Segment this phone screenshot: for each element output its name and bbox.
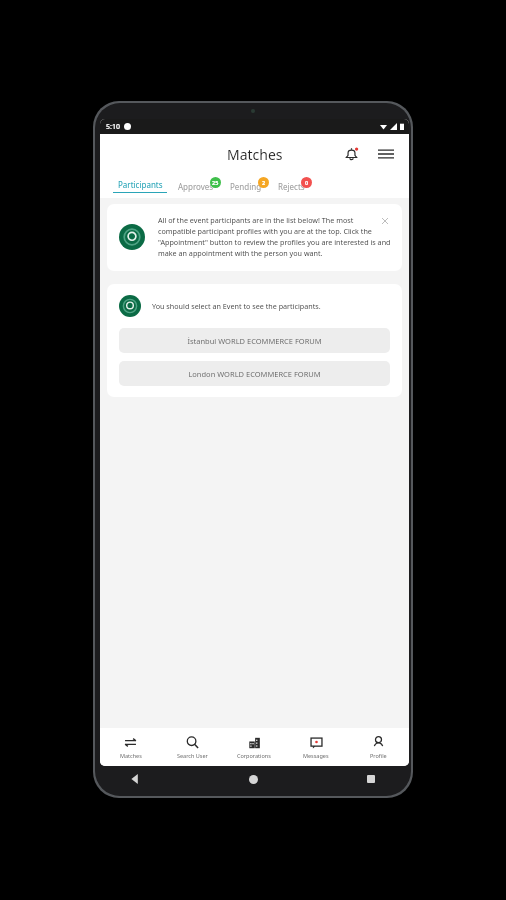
staticText: Participants — [118, 179, 163, 190]
staticText: Approves — [178, 181, 214, 192]
staticText: You should select an Event to see the pa… — [152, 301, 321, 311]
button[interactable]: Close — [379, 215, 391, 227]
staticText: 25 — [212, 179, 219, 186]
staticText: 2 — [262, 179, 266, 186]
staticText: 5:10 — [106, 122, 120, 132]
button[interactable]: Participants — [113, 179, 167, 193]
staticText: 0 — [305, 179, 309, 186]
button[interactable]: London WORLD ECOMMERCE FORUM — [119, 361, 390, 386]
button[interactable]: Notifications — [340, 143, 362, 165]
button[interactable]: Menu — [375, 143, 397, 165]
staticText: Pending — [230, 181, 262, 192]
button[interactable]: Pending — [230, 181, 273, 192]
staticText: Rejects — [278, 181, 305, 192]
button[interactable]: Corporations — [223, 728, 285, 766]
button[interactable]: Messages — [285, 728, 347, 766]
button[interactable]: Back — [128, 772, 142, 786]
staticText: Search User — [177, 752, 208, 759]
staticText: Messages — [303, 752, 329, 759]
button[interactable]: Rejects — [278, 181, 316, 192]
staticText: London WORLD ECOMMERCE FORUM — [188, 369, 321, 379]
button[interactable]: İstanbul WORLD ECOMMERCE FORUM — [119, 328, 390, 353]
staticText: All of the event participants are in the… — [158, 215, 391, 258]
button[interactable]: Search User — [161, 728, 223, 766]
button[interactable]: Matches — [100, 728, 161, 766]
staticText: Corporations — [237, 752, 271, 759]
button[interactable]: Recents — [364, 772, 378, 786]
button[interactable]: Home — [246, 772, 260, 786]
staticText: İstanbul WORLD ECOMMERCE FORUM — [187, 336, 322, 346]
staticText: Matches — [120, 752, 142, 759]
staticText: Matches — [227, 145, 283, 164]
button[interactable]: Approves — [178, 181, 225, 192]
staticText: Profile — [370, 752, 387, 759]
button[interactable]: Profile — [347, 728, 409, 766]
